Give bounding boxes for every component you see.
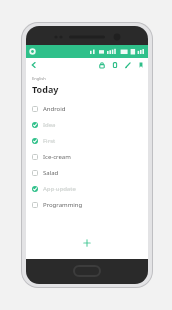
button[interactable]: Ice-cream bbox=[26, 149, 148, 165]
staticText: First bbox=[43, 137, 56, 145]
button[interactable]: Idea bbox=[26, 117, 148, 133]
staticText: Idea bbox=[43, 121, 56, 129]
button[interactable]: Back bbox=[28, 59, 40, 71]
staticText: Today bbox=[32, 83, 59, 95]
staticText: English bbox=[32, 76, 46, 81]
staticText: App update bbox=[43, 185, 76, 193]
staticText: Android bbox=[43, 105, 66, 113]
button[interactable]: Android bbox=[26, 101, 148, 117]
button[interactable]: Device bbox=[109, 59, 120, 70]
staticText: Ice-cream bbox=[43, 153, 71, 161]
button[interactable]: Lock bbox=[96, 59, 107, 70]
button[interactable]: App update bbox=[26, 181, 148, 197]
button[interactable]: Edit bbox=[122, 59, 133, 70]
button[interactable]: Add task bbox=[80, 236, 94, 250]
button[interactable]: Salad bbox=[26, 165, 148, 181]
staticText: Programming bbox=[43, 201, 83, 209]
button[interactable]: Bookmark bbox=[135, 59, 146, 70]
button[interactable]: Programming bbox=[26, 197, 148, 213]
staticText: Salad bbox=[43, 169, 59, 177]
button[interactable]: First bbox=[26, 133, 148, 149]
